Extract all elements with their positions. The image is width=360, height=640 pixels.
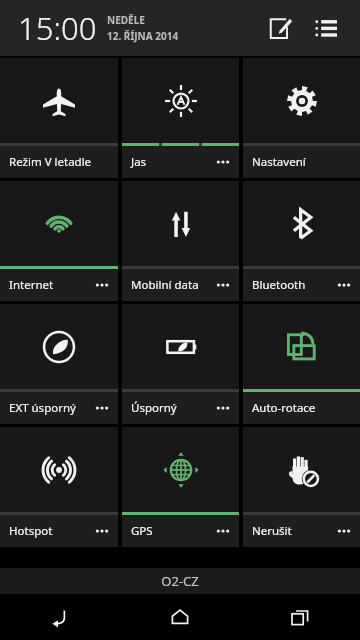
staticText: EXT úsporný (9, 400, 76, 416)
button[interactable]: EXT úsporný (0, 304, 118, 424)
staticText: Nerušit (252, 523, 292, 539)
button[interactable]: Mobilní data (122, 181, 239, 301)
button[interactable]: Internet (0, 181, 118, 301)
button[interactable]: Nastavení (243, 58, 360, 178)
button[interactable]: Úsporný (122, 304, 239, 424)
staticText: Hotspot (9, 523, 53, 539)
button[interactable]: Jas (122, 58, 239, 178)
button[interactable]: Bluetooth (243, 181, 360, 301)
button[interactable]: GPS (122, 427, 239, 547)
staticText: NEDĚLE (107, 13, 145, 27)
staticText: Režim V letadle (9, 154, 92, 170)
button[interactable]: Back (0, 594, 120, 640)
button[interactable]: Hotspot (0, 427, 118, 547)
button[interactable]: Režim V letadle (0, 58, 118, 178)
staticText: 12. ŘÍJNA 2014 (107, 29, 179, 43)
staticText: Mobilní data (131, 277, 199, 293)
staticText: 15:00 (18, 7, 97, 49)
button[interactable]: Nerušit (243, 427, 360, 547)
button[interactable]: Edit (258, 6, 302, 50)
staticText: GPS (131, 523, 153, 539)
staticText: Auto-rotace (252, 400, 316, 416)
staticText: Nastavení (252, 154, 306, 170)
staticText: O2-CZ (161, 572, 199, 590)
button[interactable]: Recents (240, 594, 360, 640)
staticText: Úsporný (131, 400, 177, 416)
button[interactable]: List (304, 6, 348, 50)
staticText: Bluetooth (252, 277, 306, 293)
staticText: Internet (9, 277, 54, 293)
button[interactable]: Home (120, 594, 240, 640)
button[interactable]: Auto-rotace (243, 304, 360, 424)
staticText: Jas (131, 154, 147, 170)
